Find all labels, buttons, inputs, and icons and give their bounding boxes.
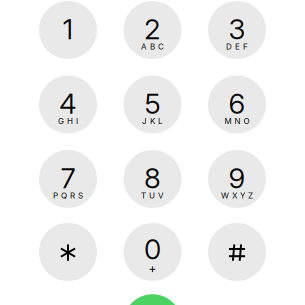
button[interactable]: 7: [39, 150, 97, 208]
staticText: +: [148, 261, 156, 276]
button[interactable]: 9: [208, 150, 266, 208]
button[interactable]: 2: [123, 1, 181, 59]
button[interactable]: 4: [39, 75, 97, 133]
staticText: Z: [248, 191, 253, 200]
staticText: J: [142, 116, 147, 126]
button[interactable]: 8: [123, 150, 181, 208]
button[interactable]: Call: [123, 294, 181, 305]
staticText: L: [158, 116, 163, 126]
staticText: O: [243, 116, 249, 126]
staticText: D: [226, 42, 232, 51]
staticText: A: [141, 42, 147, 51]
staticText: 3: [228, 12, 245, 46]
staticText: 7: [60, 161, 75, 195]
staticText: 4: [59, 87, 77, 120]
staticText: F: [243, 42, 248, 51]
staticText: G: [58, 116, 64, 126]
button[interactable]: 3: [208, 1, 266, 59]
staticText: 2: [144, 12, 161, 46]
staticText: E: [235, 42, 240, 51]
staticText: 8: [144, 161, 161, 195]
staticText: 0: [144, 232, 161, 266]
button[interactable]: 0: [123, 223, 181, 281]
staticText: W: [221, 191, 229, 200]
staticText: Q: [61, 191, 67, 200]
staticText: 5: [144, 87, 160, 120]
staticText: R: [70, 191, 75, 200]
button[interactable]: star: [39, 223, 97, 281]
staticText: I: [76, 116, 78, 126]
staticText: 9: [228, 161, 245, 195]
staticText: K: [150, 116, 155, 126]
staticText: H: [67, 116, 73, 126]
button[interactable]: pound: [208, 223, 266, 281]
staticText: B: [150, 42, 155, 51]
staticText: T: [141, 191, 146, 200]
staticText: P: [53, 191, 58, 200]
staticText: 6: [228, 87, 245, 120]
staticText: 1: [62, 12, 73, 46]
staticText: Y: [240, 191, 245, 200]
staticText: U: [149, 191, 155, 200]
staticText: C: [158, 42, 164, 51]
staticText: V: [158, 191, 164, 200]
button[interactable]: 1: [39, 1, 97, 59]
button[interactable]: 5: [123, 75, 181, 133]
button[interactable]: 6: [208, 75, 266, 133]
staticText: N: [234, 116, 240, 126]
staticText: S: [78, 191, 83, 200]
staticText: M: [224, 116, 231, 126]
staticText: X: [232, 191, 237, 200]
